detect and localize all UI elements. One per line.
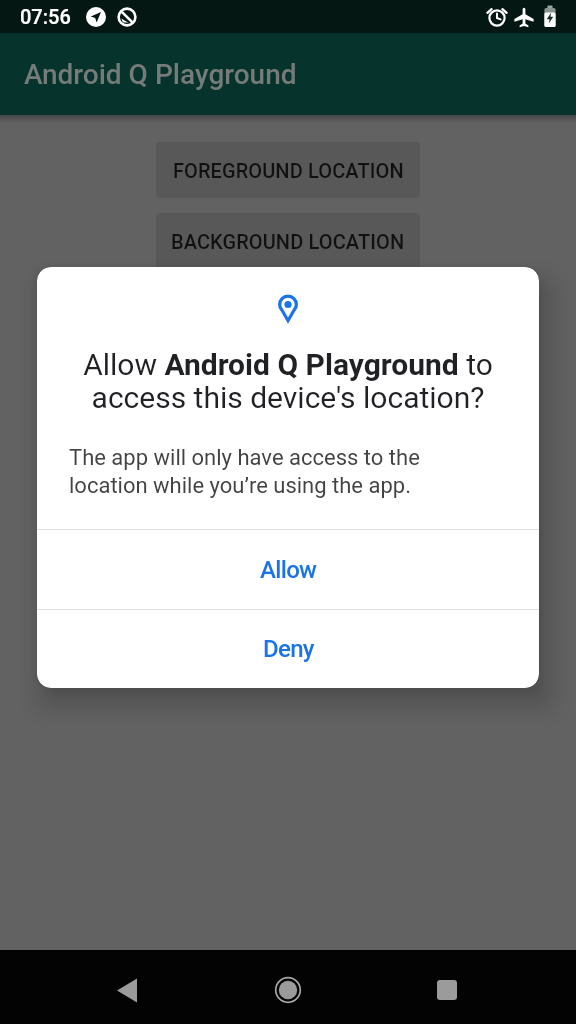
button[interactable]: Allow [37,530,539,609]
staticText: The app will only have access to the loc… [69,445,420,499]
staticText: Android Q Playground [24,58,297,91]
button[interactable] [0,950,192,1024]
staticText: FOREGROUND LOCATION [173,159,404,182]
button[interactable] [384,950,576,1024]
staticText: Allow [260,556,317,584]
staticText: BACKGROUND LOCATION [171,230,405,253]
staticText: Allow Android Q Playground to access thi… [61,347,515,415]
button[interactable] [192,950,384,1024]
button[interactable]: FOREGROUND LOCATION [156,142,420,198]
staticText: Deny [263,635,314,663]
button[interactable]: BACKGROUND LOCATION [156,213,420,269]
staticText: 07:56 [20,5,71,28]
button[interactable]: Deny [37,610,539,688]
